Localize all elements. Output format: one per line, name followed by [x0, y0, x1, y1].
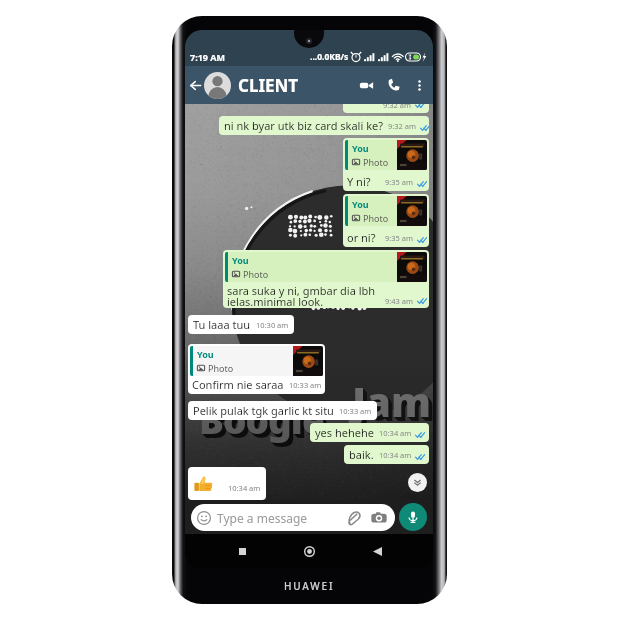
button[interactable]: Tu laaa tuu [188, 315, 294, 334]
staticText: CLIENT [238, 74, 299, 97]
staticText: 9:32 am [383, 104, 412, 110]
staticText: 9:35 am [385, 233, 414, 243]
button[interactable]: Camera [371, 510, 387, 526]
staticText: baik. [349, 447, 374, 462]
staticText: sara suka y ni, gmbar dia lbh jelas.mini… [227, 283, 376, 306]
button[interactable]: 9:32 am [343, 104, 429, 113]
staticText: 9:43 am [385, 296, 414, 306]
button[interactable]: baik. [344, 445, 429, 464]
button[interactable]: 10:34 am [188, 467, 266, 500]
staticText: 10:30 am [256, 320, 289, 330]
staticText: Photo [243, 268, 269, 280]
staticText: Type a message [217, 510, 308, 526]
staticText: Y ni? [347, 174, 371, 189]
staticText: or ni? [347, 230, 376, 245]
button[interactable]: Scroll to bottom [408, 473, 427, 492]
button[interactable]: Home [298, 540, 320, 562]
staticText: Jam [353, 375, 432, 429]
button[interactable]: You [223, 250, 429, 308]
staticText: Jam [356, 378, 433, 432]
staticText: Jam [354, 376, 433, 430]
staticText: 9:32 am [388, 121, 417, 131]
button[interactable]: Pelik pulak tgk garlic kt situ [188, 401, 377, 420]
staticText: Jam [352, 374, 431, 428]
button[interactable]: Back [188, 78, 202, 92]
button[interactable]: Voice message [399, 503, 427, 531]
staticText: Jam [355, 377, 433, 431]
staticText: You [352, 198, 369, 210]
staticText: ni nk byar utk biz card skali ke? [224, 118, 383, 133]
staticText: 10:34 am [379, 450, 412, 460]
button[interactable]: Type a message [191, 504, 395, 531]
button[interactable]: yes hehehe [310, 423, 429, 442]
button[interactable]: Call [383, 74, 405, 96]
staticText: 10:33 am [289, 380, 322, 390]
staticText: Boogie [202, 397, 327, 447]
button[interactable]: Back [366, 540, 388, 562]
staticText: Photo [363, 156, 389, 168]
staticText: yes hehehe [315, 425, 374, 440]
staticText: You [197, 348, 214, 360]
staticText: 10:34 am [379, 428, 412, 438]
staticText: Boogie [199, 394, 324, 444]
staticText: ...0.0KB/s [310, 51, 349, 63]
staticText: Tu laaa tuu [193, 317, 251, 332]
staticText: Boogie [203, 398, 328, 448]
button[interactable]: Attach [346, 510, 362, 526]
staticText: 10:33 am [339, 406, 372, 416]
staticText: Photo [208, 362, 234, 374]
staticText: Boogie [201, 396, 326, 446]
staticText: Confirm nie saraa [192, 377, 284, 392]
button[interactable]: More options [410, 76, 428, 94]
staticText: You [232, 254, 249, 266]
button[interactable]: You [188, 344, 325, 394]
staticText: 10:34 am [228, 483, 261, 493]
staticText: Boogie [200, 395, 325, 445]
button[interactable]: ni nk byar utk biz card skali ke? [219, 116, 429, 135]
button[interactable]: You [343, 138, 429, 191]
button[interactable]: Recents [231, 540, 253, 562]
staticText: You [352, 142, 369, 154]
staticText: HUAWEI [284, 579, 335, 593]
staticText: 9:35 am [385, 177, 414, 187]
button[interactable]: Video call [355, 74, 377, 96]
staticText: Photo [363, 212, 389, 224]
staticText: 7:19 AM [190, 51, 226, 63]
button[interactable]: You [343, 194, 429, 247]
staticText: Pelik pulak tgk garlic kt situ [193, 403, 334, 418]
